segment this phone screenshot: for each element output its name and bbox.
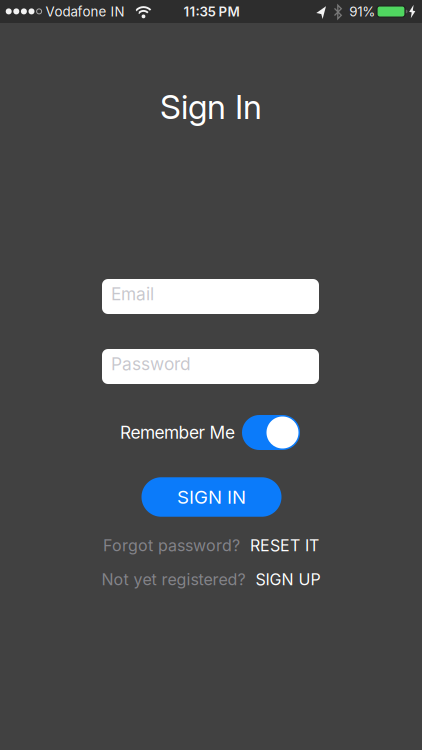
- staticText: Forgot password?: [103, 536, 240, 555]
- button[interactable]: RESET IT: [250, 536, 319, 555]
- button[interactable]: SIGN UP: [255, 570, 320, 589]
- staticText: Remember Me: [120, 422, 235, 443]
- staticText: Email: [111, 284, 154, 304]
- staticText: SIGN UP: [255, 570, 320, 589]
- staticText: SIGN IN: [177, 486, 246, 508]
- staticText: 11:35 PM: [183, 4, 239, 19]
- staticText: Sign In: [160, 87, 262, 126]
- button[interactable]: SIGN IN: [141, 477, 281, 517]
- button[interactable]: Email: [102, 279, 319, 314]
- staticText: 91%: [349, 4, 375, 19]
- staticText: Password: [111, 354, 191, 374]
- button[interactable]: Remember Me: [242, 415, 300, 450]
- staticText: RESET IT: [250, 536, 319, 555]
- staticText: Vodafone IN: [45, 4, 124, 19]
- button[interactable]: Password: [102, 349, 319, 384]
- staticText: Not yet registered?: [101, 570, 245, 589]
